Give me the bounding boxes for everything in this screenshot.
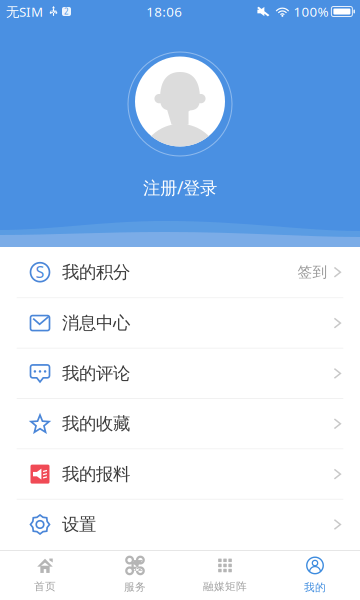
button[interactable]: 融媒矩阵 bbox=[180, 550, 270, 600]
button[interactable]: 我的 bbox=[270, 550, 360, 600]
staticText: 我的评论 bbox=[62, 363, 130, 384]
staticText: 18:06 bbox=[146, 3, 182, 20]
button[interactable]: 我的收藏 bbox=[0, 399, 360, 449]
button[interactable]: 我的评论 bbox=[0, 349, 360, 399]
button[interactable]: 服务 bbox=[90, 550, 180, 600]
staticText: 无SIM bbox=[6, 3, 43, 20]
staticText: 我的 bbox=[304, 581, 326, 594]
button[interactable]: 首页 bbox=[0, 550, 90, 600]
button[interactable]: S bbox=[0, 247, 360, 298]
staticText: S bbox=[35, 261, 44, 282]
staticText: 我的报料 bbox=[62, 463, 130, 485]
staticText: 我的积分 bbox=[62, 262, 130, 283]
staticText: 我的收藏 bbox=[62, 413, 130, 434]
staticText: 服务 bbox=[124, 580, 146, 593]
staticText: 消息中心 bbox=[62, 312, 130, 334]
staticText: 签到 bbox=[297, 263, 327, 281]
button[interactable]: 设置 bbox=[0, 500, 360, 549]
staticText: 设置 bbox=[62, 514, 96, 535]
staticText: 100% bbox=[293, 3, 328, 20]
staticText: 2 bbox=[64, 6, 69, 17]
staticText: 首页 bbox=[34, 580, 56, 593]
staticText: 融媒矩阵 bbox=[203, 580, 247, 593]
staticText: 注册/登录 bbox=[143, 176, 217, 199]
button[interactable]: 我的报料 bbox=[0, 449, 360, 500]
button[interactable]: 消息中心 bbox=[0, 298, 360, 349]
